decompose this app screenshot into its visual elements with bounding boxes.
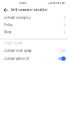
button[interactable]: Obraz: [0, 29, 68, 36]
staticText: Volby: [4, 23, 12, 27]
staticText: Obraz: [4, 30, 11, 34]
button[interactable]: Zobrazit na displeji: [0, 14, 68, 21]
staticText: Zobrazit vychozí síť: [4, 57, 29, 60]
button[interactable]: Back: [1, 6, 10, 14]
staticText: Zobrazit nové zprávy: [4, 49, 31, 52]
staticText: Další nastavení odesílání: [10, 8, 47, 12]
staticText: Chytré funkce: [4, 41, 23, 45]
button[interactable]: Zobrazit nové zprávy: [0, 47, 68, 55]
button[interactable]: Volby: [0, 21, 68, 29]
button[interactable]: Zobrazit vychozí síť: [0, 55, 68, 63]
staticText: Zobrazit na displeji: [4, 16, 31, 19]
